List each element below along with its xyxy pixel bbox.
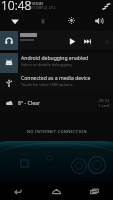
button[interactable]: Home <box>37 181 75 200</box>
staticText: 10:48 <box>1 0 32 13</box>
staticText: OCTOBER 23, 2012 <box>30 6 56 10</box>
staticText: Select to disable debugging <box>21 62 72 67</box>
button[interactable]: Android debugging enabled <box>0 53 113 73</box>
button[interactable]: Next track <box>81 35 93 47</box>
staticText: Connected as a media device <box>21 75 91 82</box>
staticText: 08:23 <box>99 98 110 103</box>
staticText: NO INTERNET CONNECTION <box>27 129 87 134</box>
button[interactable]: Dismiss <box>102 37 111 46</box>
button[interactable]: Connected as a media device <box>0 73 113 92</box>
staticText: TUESDAY <box>30 2 44 6</box>
staticText: Android debugging enabled <box>21 55 89 62</box>
staticText: Touch for other USB options <box>21 82 73 87</box>
staticText: 1 card <box>98 103 110 108</box>
button[interactable]: Back <box>0 181 37 200</box>
button[interactable]: Battery <box>29 14 57 27</box>
button[interactable]: Wi-Fi <box>0 14 29 27</box>
button[interactable]: Play <box>66 35 78 47</box>
button[interactable]: Play <box>0 31 113 50</box>
button[interactable]: 8° - Clear <box>0 93 113 112</box>
button[interactable]: Sound <box>85 14 113 27</box>
button[interactable]: Settings <box>100 1 112 13</box>
button[interactable]: Brightness <box>57 14 85 27</box>
staticText: 8° - Clear <box>18 99 41 106</box>
button[interactable]: Recent apps <box>75 181 113 200</box>
